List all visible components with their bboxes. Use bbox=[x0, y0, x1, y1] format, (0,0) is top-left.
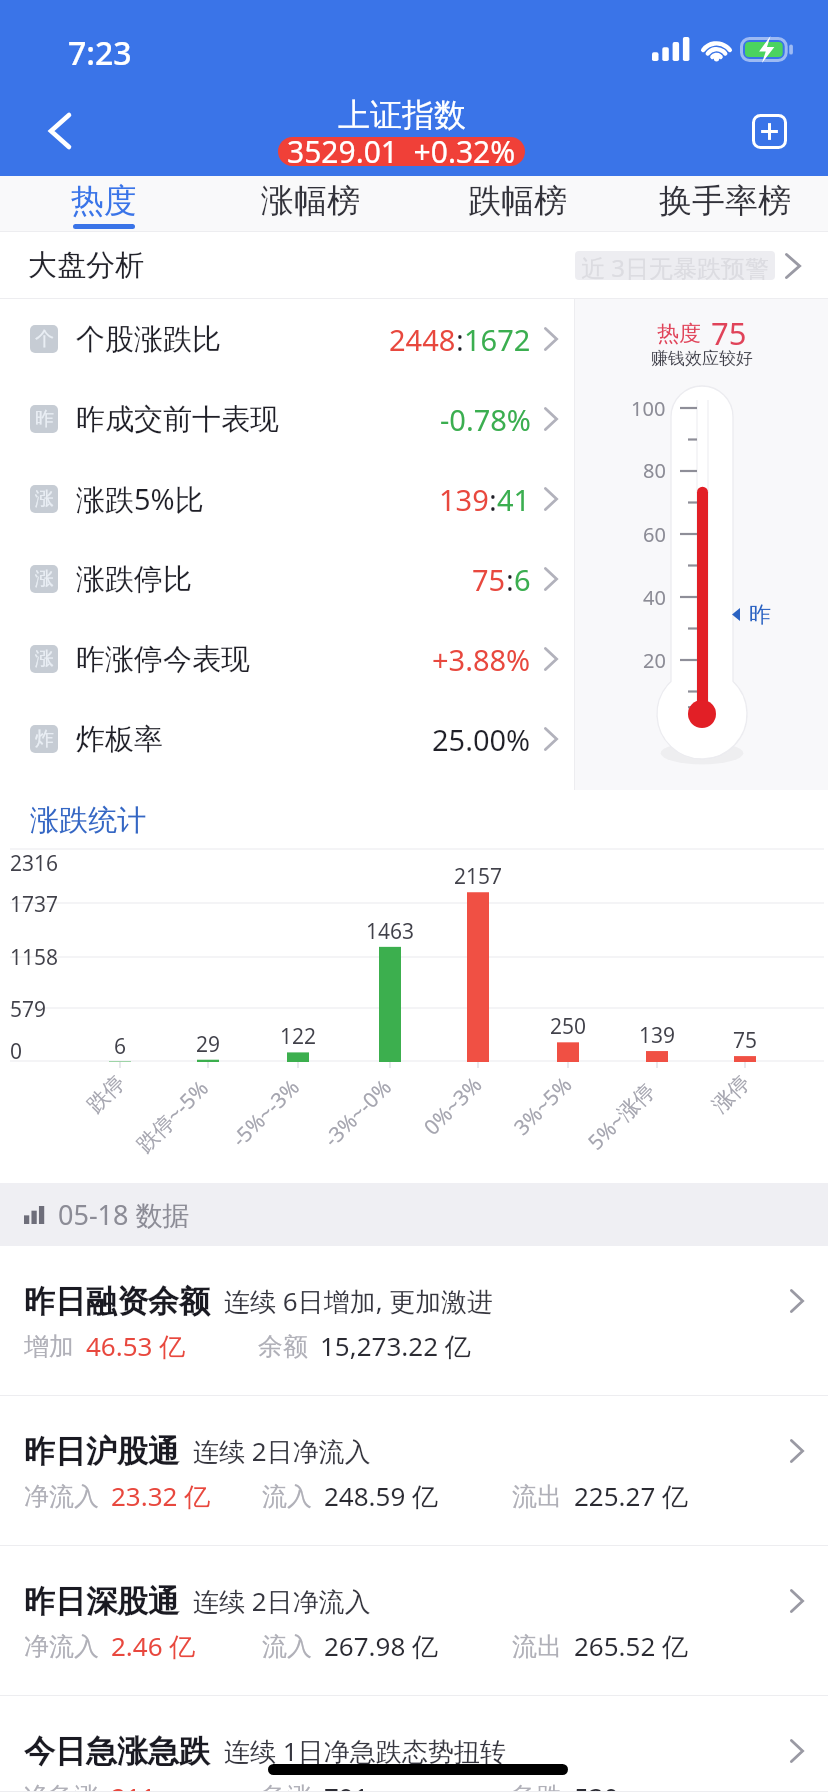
staticText: 昨成交前十表现 bbox=[76, 401, 279, 438]
button[interactable]: 涨幅榜 bbox=[207, 176, 414, 232]
staticText: 3529.01 +0.32% bbox=[287, 131, 516, 172]
button[interactable]: 昨日深股通 bbox=[0, 1546, 828, 1696]
staticText: 2157 bbox=[454, 862, 503, 890]
button[interactable]: 炸 bbox=[0, 699, 574, 779]
staticText: : bbox=[506, 560, 514, 599]
staticText: 跌幅榜 bbox=[468, 180, 567, 222]
button[interactable]: 昨日融资余额 bbox=[0, 1246, 828, 1396]
staticText: 昨 bbox=[749, 601, 771, 629]
staticText: 579 bbox=[10, 995, 47, 1023]
staticText: 炸板率 bbox=[76, 721, 163, 758]
staticText: 连续 2日净流入 bbox=[193, 1583, 371, 1619]
button[interactable]: 热度 bbox=[0, 176, 207, 232]
staticText: 炸 bbox=[35, 727, 54, 751]
staticText: 净急涨 bbox=[24, 1781, 99, 1792]
staticText: 急涨 bbox=[262, 1781, 312, 1792]
staticText: 46.53 亿 bbox=[86, 1328, 186, 1364]
staticText: 139 bbox=[439, 480, 489, 519]
staticText: 248.59 亿 bbox=[324, 1478, 439, 1514]
staticText: 05-18 数据 bbox=[58, 1196, 190, 1233]
staticText: 25.00% bbox=[432, 720, 531, 759]
staticText: +3.88% bbox=[432, 640, 531, 679]
staticText: 0 bbox=[10, 1037, 23, 1065]
staticText: 60 bbox=[643, 521, 666, 548]
staticText: 530 bbox=[574, 1779, 619, 1792]
staticText: 个股涨跌比 bbox=[76, 321, 221, 358]
button[interactable]: 昨 bbox=[0, 379, 574, 459]
staticText: 流入 bbox=[262, 1631, 312, 1662]
button[interactable]: 今日急涨急跌 bbox=[0, 1696, 828, 1792]
staticText: 跌停~-5% bbox=[130, 1074, 215, 1158]
staticText: 80 bbox=[643, 457, 666, 484]
staticText: 换手率榜 bbox=[659, 180, 791, 222]
staticText: 昨日沪股通 bbox=[24, 1432, 179, 1471]
button[interactable]: 个 bbox=[0, 299, 574, 379]
staticText: 40 bbox=[643, 584, 666, 611]
staticText: 2448 bbox=[389, 320, 456, 359]
staticText: 267.98 亿 bbox=[324, 1628, 439, 1664]
staticText: 涨幅榜 bbox=[261, 180, 360, 222]
staticText: : bbox=[456, 320, 464, 359]
staticText: 跌停 bbox=[82, 1070, 130, 1118]
staticText: 1463 bbox=[366, 917, 415, 945]
staticText: 3%~5% bbox=[507, 1071, 578, 1141]
staticText: 1672 bbox=[464, 320, 531, 359]
staticText: 近 3日无暴跌预警 bbox=[581, 251, 769, 280]
staticText: 增加 bbox=[24, 1331, 74, 1362]
staticText: 热度 bbox=[71, 180, 137, 222]
staticText: 7:23 bbox=[68, 31, 132, 67]
staticText: 热度 bbox=[657, 320, 701, 348]
staticText: 余额 bbox=[258, 1331, 308, 1362]
staticText: 大盘分析 bbox=[28, 247, 144, 284]
staticText: 连续 1日净急跌态势扭转 bbox=[224, 1733, 506, 1769]
staticText: 1737 bbox=[10, 890, 59, 918]
staticText: 涨 bbox=[35, 567, 54, 591]
staticText: 个 bbox=[35, 327, 54, 351]
staticText: 75 bbox=[472, 560, 506, 599]
staticText: 23.32 亿 bbox=[111, 1478, 211, 1514]
staticText: 涨 bbox=[35, 487, 54, 511]
staticText: -3%~-0% bbox=[317, 1073, 398, 1153]
button[interactable]: 近 3日无暴跌预警 bbox=[575, 251, 801, 280]
staticText: 15,273.22 亿 bbox=[320, 1328, 471, 1364]
staticText: 6 bbox=[114, 1032, 127, 1060]
staticText: 流出 bbox=[512, 1481, 562, 1512]
staticText: 昨日融资余额 bbox=[24, 1282, 210, 1321]
staticText: 2.46 亿 bbox=[111, 1628, 196, 1664]
button[interactable]: 昨日沪股通 bbox=[0, 1396, 828, 1546]
staticText: 265.52 亿 bbox=[574, 1628, 689, 1664]
staticText: 791 bbox=[324, 1779, 369, 1792]
staticText: 41 bbox=[497, 480, 531, 519]
staticText: -0.78% bbox=[440, 400, 531, 439]
staticText: 连续 6日增加, 更加激进 bbox=[224, 1283, 494, 1319]
staticText: 涨跌统计 bbox=[30, 802, 146, 839]
staticText: 涨 bbox=[35, 647, 54, 671]
staticText: 赚钱效应较好 bbox=[651, 348, 753, 369]
staticText: 上证指数 bbox=[338, 95, 466, 135]
staticText: 涨跌停比 bbox=[76, 561, 192, 598]
staticText: 211 bbox=[111, 1779, 156, 1792]
staticText: 225.27 亿 bbox=[574, 1478, 689, 1514]
button[interactable]: Back bbox=[20, 88, 100, 176]
staticText: 139 bbox=[639, 1021, 676, 1049]
staticText: 连续 2日净流入 bbox=[193, 1433, 371, 1469]
staticText: : bbox=[489, 480, 497, 519]
staticText: 净流入 bbox=[24, 1481, 99, 1512]
button[interactable]: 涨 bbox=[0, 619, 574, 699]
staticText: 流出 bbox=[512, 1631, 562, 1662]
staticText: 昨涨停今表现 bbox=[76, 641, 250, 678]
staticText: 122 bbox=[280, 1022, 317, 1050]
staticText: 净流入 bbox=[24, 1631, 99, 1662]
staticText: 2316 bbox=[10, 849, 59, 877]
staticText: 昨 bbox=[35, 407, 54, 431]
button[interactable]: 换手率榜 bbox=[621, 176, 828, 232]
button[interactable]: 跌幅榜 bbox=[414, 176, 621, 232]
staticText: -5%~-3% bbox=[225, 1073, 306, 1153]
staticText: 5%~涨停 bbox=[581, 1076, 661, 1156]
button[interactable]: Add to watchlist bbox=[735, 98, 803, 166]
staticText: 29 bbox=[196, 1030, 221, 1058]
staticText: 75 bbox=[733, 1026, 758, 1054]
button[interactable]: 涨 bbox=[0, 539, 574, 619]
button[interactable]: 涨 bbox=[0, 459, 574, 539]
staticText: 今日急涨急跌 bbox=[24, 1732, 210, 1771]
